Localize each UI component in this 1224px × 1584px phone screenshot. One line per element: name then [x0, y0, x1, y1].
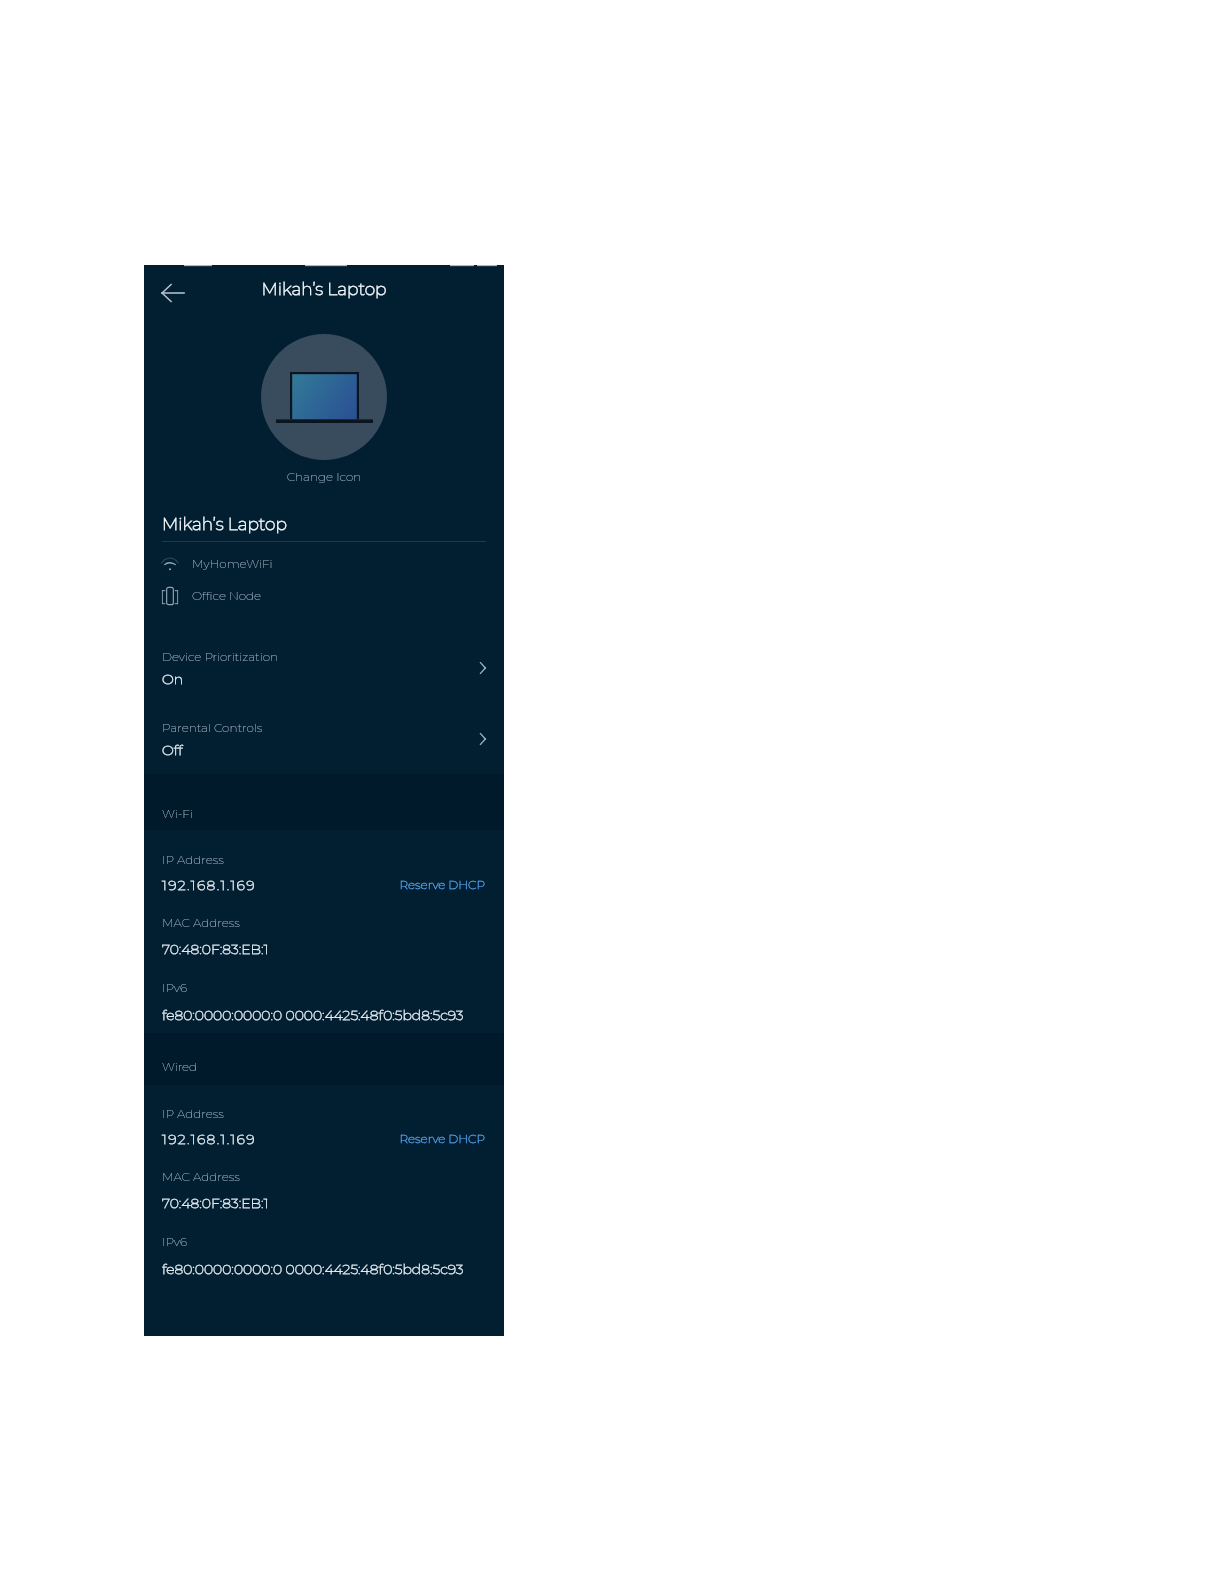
staticText: MAC Address: [162, 1169, 240, 1184]
staticText: 192.168.1.169: [162, 1130, 256, 1147]
staticText: Reserve DHCP: [384, 1131, 485, 1146]
staticText: Off: [162, 741, 183, 758]
staticText: 192.168.1.169: [162, 876, 256, 893]
staticText: MyHomeWiFi: [192, 556, 273, 571]
staticText: Reserve DHCP: [384, 877, 485, 892]
staticText: 70:48:0F:83:EB:1: [162, 1194, 269, 1211]
button[interactable]: Reserve DHCP: [384, 874, 485, 896]
button[interactable]: Reserve DHCP: [384, 1128, 485, 1150]
staticText: fe80:0000:0000:0 0000:4425:48f0:5bd8:5c9…: [162, 1006, 464, 1023]
button[interactable]: [144, 637, 504, 699]
button[interactable]: Back: [153, 273, 193, 313]
staticText: IP Address: [162, 852, 224, 867]
staticText: MAC Address: [162, 915, 240, 930]
staticText: On: [162, 670, 184, 687]
staticText: Parental Controls: [162, 720, 263, 735]
staticText: Wi-Fi: [162, 806, 193, 821]
staticText: IP Address: [162, 1106, 224, 1121]
staticText: Office Node: [192, 588, 262, 603]
staticText: Change Icon: [144, 469, 504, 484]
staticText: 70:48:0F:83:EB:1: [162, 940, 269, 957]
staticText: IPv6: [162, 980, 188, 995]
staticText: Device Prioritization: [162, 649, 279, 664]
staticText: Mikah’s Laptop: [144, 279, 504, 300]
button[interactable]: Change device icon: [261, 334, 387, 460]
staticText: Wired: [162, 1059, 198, 1074]
staticText: IPv6: [162, 1234, 188, 1249]
button[interactable]: [144, 708, 504, 770]
staticText: Mikah’s Laptop: [162, 514, 287, 535]
staticText: fe80:0000:0000:0 0000:4425:48f0:5bd8:5c9…: [162, 1260, 464, 1277]
